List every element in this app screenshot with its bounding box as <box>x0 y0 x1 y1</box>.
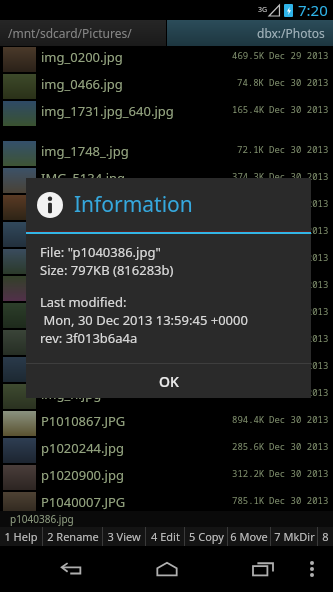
staticText: 312.2K <box>232 467 265 479</box>
button[interactable]: 3 View <box>103 527 145 546</box>
staticText: 4 Edit <box>151 529 180 544</box>
button[interactable]: 5 Copy <box>185 527 227 546</box>
staticText: img_h.jpg <box>41 385 102 403</box>
staticText: P1040007.JPG <box>41 493 126 511</box>
button[interactable]: Back <box>50 547 94 591</box>
button[interactable]: img_g.jpg <box>0 356 333 383</box>
staticText: Dec 30 2013 <box>269 467 329 479</box>
button[interactable]: More options <box>299 556 325 582</box>
staticText: Dec 30 2013 <box>269 76 329 88</box>
staticText: IMG_5134.jpg <box>41 169 126 187</box>
button[interactable]: Home <box>145 547 189 591</box>
staticText: 7:20 <box>298 0 328 20</box>
staticText: img_0200.jpg <box>41 48 123 66</box>
staticText: img_0466.jpg <box>41 75 123 93</box>
staticText: p1040386.jpg <box>10 512 74 526</box>
button[interactable]: img_0200.jpg <box>0 46 333 73</box>
staticText: Dec 29 2013 <box>269 49 329 61</box>
staticText: Size: 797KB (816283b) <box>40 261 174 279</box>
staticText: img_e.jpg <box>41 304 101 322</box>
button[interactable]: P1010867.JPG <box>0 410 333 437</box>
button[interactable]: P1040007.JPG <box>0 491 333 511</box>
staticText: 177.2K <box>232 359 265 371</box>
staticText: 74.8K <box>237 76 265 88</box>
button[interactable]: img_e.jpg <box>0 302 333 329</box>
staticText: p1020244.jpg <box>41 439 124 457</box>
button[interactable]: Recent apps <box>241 547 285 591</box>
staticText: 2 Rename <box>47 529 99 544</box>
staticText: 8 <box>322 529 329 544</box>
button[interactable]: img_d.jpg <box>0 275 333 302</box>
staticText: Dec 30 2013 <box>269 224 329 236</box>
staticText: Dec 30 2013 <box>269 359 329 371</box>
button[interactable]: img_1748_.jpg <box>0 140 333 167</box>
staticText: Dec 30 2013 <box>269 170 329 182</box>
staticText: img_c.jpg <box>41 250 100 268</box>
button[interactable]: 2 Rename <box>43 527 102 546</box>
button[interactable]: 6 Move <box>228 527 270 546</box>
staticText: img_1748_.jpg <box>41 142 129 160</box>
button[interactable]: img_1731.jpg_640.jpg <box>0 100 333 140</box>
staticText: 7 MkDir <box>274 529 315 544</box>
staticText: Dec 30 2013 <box>269 143 329 155</box>
staticText: img_1731.jpg_640.jpg <box>41 102 174 120</box>
staticText: dbx:/Photos <box>257 25 325 41</box>
button[interactable]: img_a.jpg <box>0 194 333 221</box>
staticText: Information <box>74 190 193 219</box>
button[interactable]: OK <box>26 364 311 398</box>
staticText: img_g.jpg <box>41 358 102 376</box>
staticText: Dec 30 2013 <box>269 332 329 344</box>
staticText: img_b.jpg <box>41 223 102 241</box>
staticText: 3 View <box>107 529 141 544</box>
staticText: Mon, 30 Dec 2013 13:59:45 +0000 <box>40 311 248 329</box>
staticText: Dec 30 2013 <box>269 251 329 263</box>
button[interactable]: 7 MkDir <box>271 527 317 546</box>
staticText: 469.5K <box>232 49 265 61</box>
staticText: Last modified: <box>40 293 127 311</box>
staticText: OK <box>159 372 179 391</box>
staticText: 6 Move <box>230 529 268 544</box>
staticText: 165.4K <box>232 103 265 115</box>
staticText: img_f.jpg <box>41 331 98 349</box>
staticText: img_a.jpg <box>41 196 101 214</box>
button[interactable]: p1020244.jpg <box>0 437 333 464</box>
staticText: 3G <box>258 5 268 15</box>
staticText: 374.3K <box>232 170 265 182</box>
staticText: 72.1K <box>237 143 265 155</box>
staticText: /mnt/sdcard/Pictures/ <box>8 25 132 41</box>
button[interactable]: dbx:/Photos <box>167 20 333 46</box>
button[interactable]: /mnt/sdcard/Pictures/ <box>0 20 166 46</box>
button[interactable]: img_c.jpg <box>0 248 333 275</box>
button[interactable]: img_0466.jpg <box>0 73 333 100</box>
button[interactable]: p1020900.jpg <box>0 464 333 491</box>
staticText: 5 Copy <box>189 529 224 544</box>
button[interactable]: img_b.jpg <box>0 221 333 248</box>
button[interactable]: 1 Help <box>0 527 42 546</box>
staticText: 894.4K <box>232 413 265 425</box>
button[interactable]: img_f.jpg <box>0 329 333 356</box>
staticText: p1020900.jpg <box>41 466 124 484</box>
button[interactable]: IMG_5134.jpg <box>0 167 333 194</box>
staticText: Dec 30 2013 <box>269 103 329 115</box>
staticText: Dec 30 2013 <box>269 305 329 317</box>
staticText: 140.7K <box>232 305 265 317</box>
staticText: Dec 30 2013 <box>269 197 329 209</box>
staticText: 785.1K <box>232 494 265 506</box>
button[interactable]: img_h.jpg <box>0 383 333 410</box>
staticText: 1 Help <box>4 529 38 544</box>
staticText: rev: 3f013b6a4a <box>40 329 138 347</box>
staticText: 285.6K <box>232 440 265 452</box>
staticText: Dec 30 2013 <box>269 386 329 398</box>
button[interactable]: 4 Edit <box>146 527 184 546</box>
staticText: Dec 30 2013 <box>269 278 329 290</box>
staticText: File: "p1040386.jpg" <box>40 243 161 261</box>
button[interactable]: 8 <box>318 527 333 546</box>
staticText: Dec 30 2013 <box>269 413 329 425</box>
staticText: 90.1K <box>237 224 265 236</box>
